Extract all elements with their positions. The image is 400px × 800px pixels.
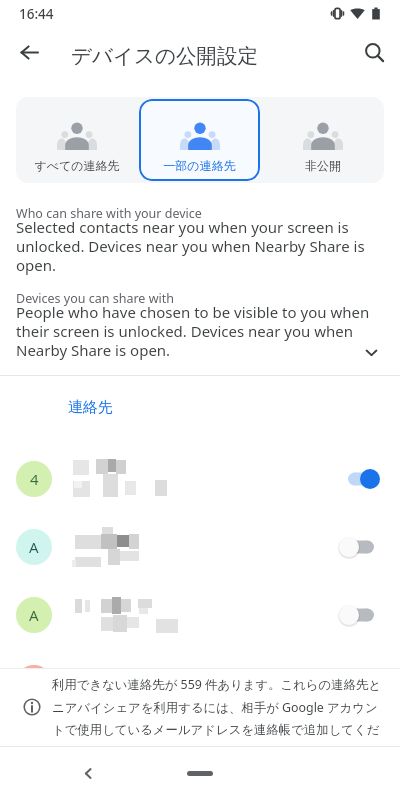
staticText: 4 (30, 469, 39, 489)
button[interactable]: Toggle (332, 525, 380, 569)
staticText: A (29, 605, 39, 625)
staticText: Devices you can share with (16, 290, 174, 307)
staticText: デバイスの公開設定 (71, 43, 258, 69)
button[interactable]: 一部の連絡先 (139, 99, 260, 181)
button[interactable]: 4 (0, 445, 400, 513)
button[interactable]: Toggle (0, 649, 400, 717)
button[interactable]: Home (187, 771, 213, 776)
staticText: A (29, 537, 39, 557)
staticText: Selected contacts near you when your scr… (16, 217, 384, 275)
button[interactable]: すべての連絡先 (17, 99, 137, 181)
staticText: People who have chosen to be visible to … (16, 302, 384, 360)
button[interactable]: A (0, 581, 400, 649)
button[interactable]: Toggle (332, 593, 380, 637)
staticText: 連絡先 (68, 398, 113, 417)
button[interactable]: Back (74, 759, 102, 787)
staticText: 非公開 (305, 158, 341, 173)
staticText: すべての連絡先 (34, 158, 120, 173)
button[interactable]: Back (11, 34, 47, 70)
button[interactable]: Toggle (332, 661, 380, 705)
button[interactable]: Toggle (332, 457, 380, 501)
button[interactable]: A (0, 513, 400, 581)
staticText: Who can share with your device (16, 205, 202, 222)
staticText: 一部の連絡先 (163, 158, 236, 173)
button[interactable]: Search (355, 33, 395, 73)
staticText: 利用できない連絡先が 559 件あります。これらの連絡先とニアバイシェアを利用す… (52, 676, 386, 738)
button[interactable]: 非公開 (262, 99, 383, 181)
staticText: 16:44 (19, 5, 54, 23)
button[interactable]: Expand (358, 339, 384, 365)
